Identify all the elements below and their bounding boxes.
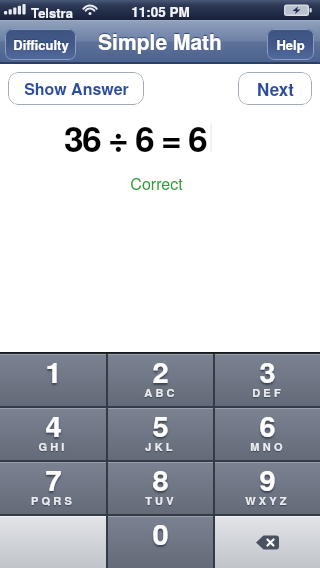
button[interactable]: Next <box>238 72 312 105</box>
button[interactable]: 7 <box>0 462 106 514</box>
button[interactable] <box>0 516 106 568</box>
staticText: Next <box>257 77 294 101</box>
button[interactable]: 6 <box>215 408 320 460</box>
staticText: 1 <box>45 350 62 392</box>
staticText: 11:05 PM <box>131 2 190 20</box>
staticText: 9 <box>259 458 276 500</box>
staticText: TUV <box>145 493 177 509</box>
staticText: GHI <box>38 439 68 455</box>
staticText: 3 <box>259 350 276 392</box>
staticText: 5 <box>152 404 169 446</box>
button[interactable]: Help <box>267 29 314 60</box>
button[interactable]: 5 <box>108 408 213 460</box>
staticText: ABC <box>144 385 178 401</box>
staticText: Simple Math <box>98 26 222 56</box>
staticText: 6 <box>259 404 276 446</box>
button[interactable]: 9 <box>215 462 320 514</box>
button[interactable]: 1 <box>0 354 106 406</box>
button[interactable]: 8 <box>108 462 213 514</box>
staticText: PQRS <box>31 493 75 509</box>
staticText: DEF <box>252 385 284 401</box>
button[interactable]: Show Answer <box>8 72 144 105</box>
staticText: 36 ÷ 6 = 6 <box>64 112 206 163</box>
staticText: 2 <box>152 350 169 392</box>
staticText: JKL <box>145 439 176 455</box>
button[interactable] <box>215 516 320 568</box>
staticText: WXYZ <box>245 493 290 509</box>
button[interactable]: 0 <box>108 516 213 568</box>
button[interactable]: 4 <box>0 408 106 460</box>
staticText: 4 <box>45 404 62 446</box>
staticText: 0 <box>152 512 169 554</box>
staticText: Help <box>276 35 305 54</box>
button[interactable]: 3 <box>215 354 320 406</box>
staticText: MNO <box>250 439 286 455</box>
staticText: 7 <box>45 458 62 500</box>
button[interactable]: 2 <box>108 354 213 406</box>
staticText: Telstra <box>31 3 73 20</box>
staticText: Correct <box>130 172 183 195</box>
button[interactable]: Difficulty <box>5 29 76 60</box>
staticText: 8 <box>152 458 169 500</box>
staticText: Difficulty <box>13 35 69 54</box>
staticText: Show Answer <box>24 77 129 100</box>
